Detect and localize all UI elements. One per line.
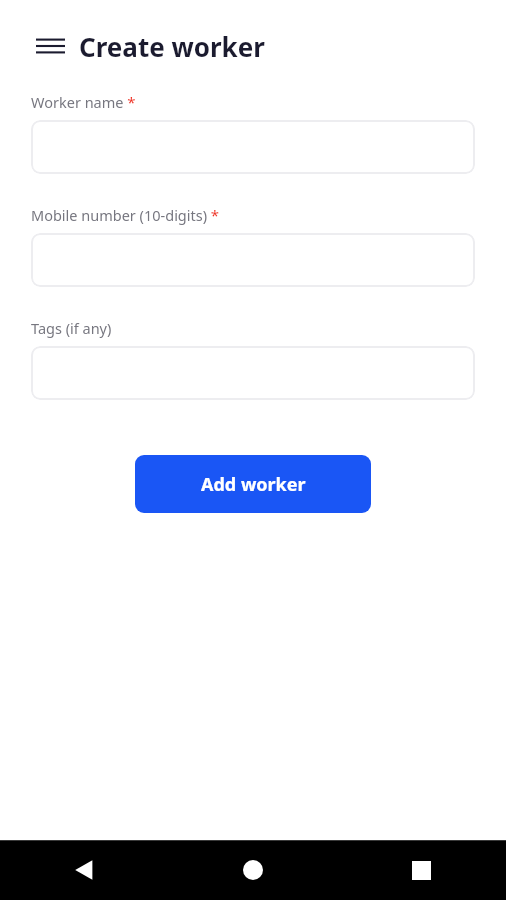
staticText: Create worker [79, 29, 265, 64]
button[interactable] [31, 120, 475, 174]
staticText: Worker name * [31, 92, 136, 112]
staticText: Add worker [201, 472, 306, 497]
staticText: Tags (if any) [31, 318, 112, 338]
staticText: Mobile number (10-digits) * [31, 205, 220, 225]
button[interactable]: Back [0, 840, 168, 900]
button[interactable]: Open navigation menu [33, 31, 67, 61]
button[interactable]: Recent apps [337, 840, 506, 900]
button[interactable] [31, 346, 475, 400]
button[interactable]: Add worker [135, 455, 371, 513]
button[interactable] [31, 233, 475, 287]
button[interactable]: Home [168, 840, 337, 900]
